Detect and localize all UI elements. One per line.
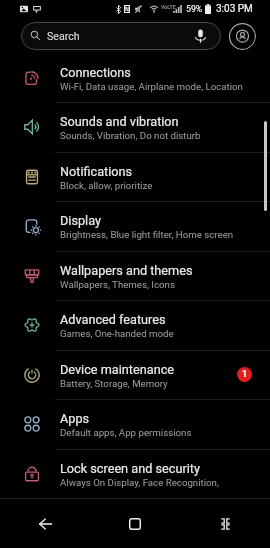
button[interactable]: Display — [0, 201, 270, 251]
staticText: Notifications — [60, 164, 133, 179]
staticText: Wallpapers, Themes, Icons — [60, 279, 175, 290]
staticText: Wi-Fi, Data usage, Airplane mode, Locati… — [60, 81, 243, 92]
staticText: Always On Display, Face Recognition, Fin… — [60, 477, 248, 488]
button[interactable]: Connections — [0, 53, 270, 103]
staticText: Brightness, Blue light filter, Home scre… — [60, 229, 234, 240]
button[interactable]: Advanced features — [0, 300, 270, 350]
button[interactable]: Lock screen and security — [0, 449, 270, 499]
staticText: Connections — [60, 65, 131, 80]
staticText: Search — [47, 30, 80, 42]
staticText: Apps — [60, 411, 90, 426]
staticText: Battery, Storage, Memory — [60, 378, 168, 389]
button[interactable]: Account — [228, 22, 256, 50]
button[interactable]: Notifications — [0, 152, 270, 202]
staticText: 1 — [242, 369, 248, 380]
staticText: 59% — [186, 4, 203, 14]
staticText: Display — [60, 213, 101, 228]
staticText: 3:03 PM — [216, 3, 253, 15]
button[interactable]: Search — [21, 22, 221, 50]
staticText: Sounds, Vibration, Do not disturb — [60, 130, 201, 141]
staticText: Advanced features — [60, 312, 166, 327]
staticText: Games, One-handed mode — [60, 328, 174, 339]
button[interactable]: Apps — [0, 399, 270, 449]
staticText: Default apps, App permissions — [60, 427, 192, 438]
button[interactable]: Back — [0, 500, 90, 548]
staticText: VoLTE — [161, 4, 176, 10]
staticText: Lock screen and security — [60, 461, 200, 476]
button[interactable]: Wallpapers and themes — [0, 251, 270, 301]
staticText: Device maintenance — [60, 362, 175, 377]
staticText: Block, allow, prioritize — [60, 180, 153, 191]
button[interactable]: Sounds and vibration — [0, 102, 270, 152]
staticText: Sounds and vibration — [60, 114, 179, 129]
button[interactable]: Recent apps — [180, 500, 270, 548]
staticText: Wallpapers and themes — [60, 263, 193, 278]
button[interactable]: Home — [90, 500, 180, 548]
button[interactable]: Device maintenance — [0, 350, 270, 400]
